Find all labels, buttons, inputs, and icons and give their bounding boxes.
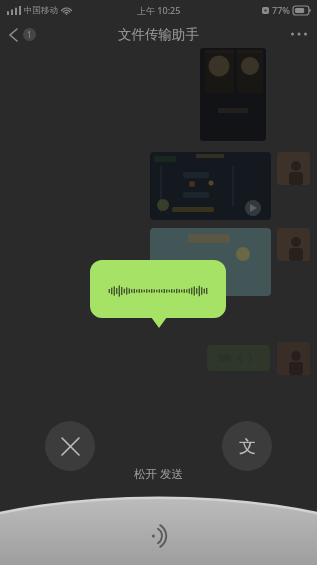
- staticText: 上午 10:25: [137, 4, 181, 16]
- button[interactable]: Cancel: [45, 421, 95, 471]
- staticText: 文: [239, 436, 256, 457]
- button[interactable]: More options: [281, 26, 317, 42]
- button[interactable]: Convert to text: [222, 421, 272, 471]
- staticText: 松开 发送: [134, 466, 183, 482]
- staticText: 77%: [272, 4, 290, 16]
- button[interactable]: Back: [0, 24, 46, 45]
- staticText: 1: [27, 29, 32, 40]
- staticText: 文件传输助手: [118, 26, 199, 43]
- staticText: 中国移动: [24, 5, 58, 16]
